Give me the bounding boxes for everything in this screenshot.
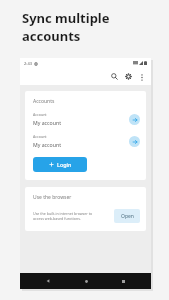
staticText: accounts [22,27,81,45]
button[interactable]: Open account [129,136,140,147]
button[interactable]: More options [136,71,148,83]
staticText: My account [33,119,62,126]
button[interactable]: Account [33,112,140,126]
staticText: Sync multiple [22,9,110,27]
staticText: My account [33,141,62,148]
button[interactable]: Open [114,209,140,223]
staticText: Use the built-in internet browser to [33,211,93,216]
staticText: access web-based functions. [33,216,81,221]
button[interactable]: Recent apps [113,273,133,289]
staticText: Accounts [33,98,55,105]
staticText: 2:43 [24,61,32,66]
button[interactable]: Open account [129,114,140,125]
staticText: Use the browser [33,194,72,201]
button[interactable]: Account [33,134,140,148]
button[interactable]: Home [76,273,96,289]
staticText: Open [121,213,134,220]
staticText: Login [57,161,72,168]
button[interactable]: Search [108,70,121,83]
button[interactable]: Settings [122,70,135,83]
staticText: Account [33,112,47,117]
button[interactable]: Login [33,157,87,172]
button[interactable]: Back [38,273,58,289]
staticText: Account [33,134,47,139]
